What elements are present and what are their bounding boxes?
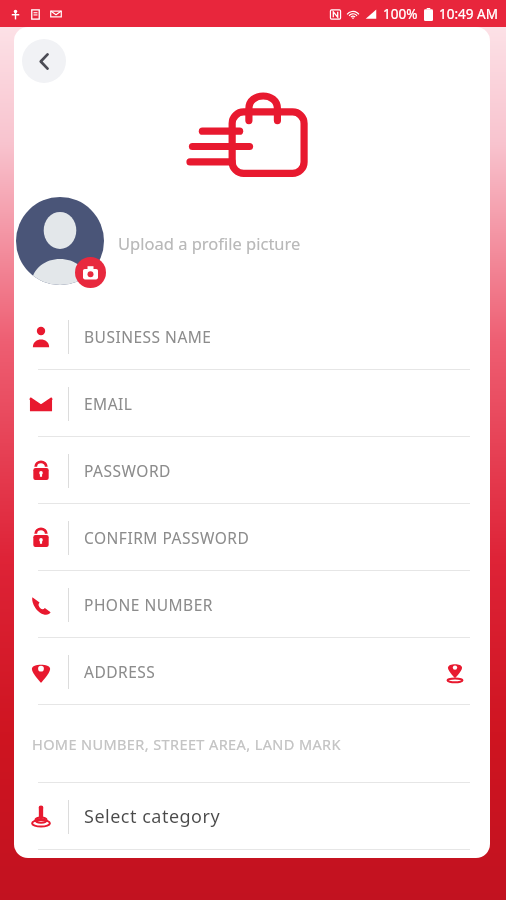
staticText: PASSWORD <box>84 460 171 481</box>
button[interactable]: ADDRESS <box>14 638 490 705</box>
button[interactable]: Select category <box>14 783 490 850</box>
staticText: EMAIL <box>84 393 133 414</box>
button[interactable]: CONFIRM PASSWORD <box>14 504 490 571</box>
button[interactable]: BUSINESS NAME <box>14 303 490 370</box>
staticText: 10:49 AM <box>439 5 498 23</box>
staticText: 100% <box>383 5 418 23</box>
staticText: ADDRESS <box>84 661 156 682</box>
staticText: Select category <box>84 804 221 829</box>
button[interactable]: HOME NUMBER, STREET AREA, LAND MARK <box>14 705 490 783</box>
staticText: Upload a profile picture <box>118 232 301 254</box>
button[interactable]: PASSWORD <box>14 437 490 504</box>
button[interactable]: EMAIL <box>14 370 490 437</box>
other: Change photo <box>75 257 106 288</box>
button[interactable]: PHONE NUMBER <box>14 571 490 638</box>
staticText: PHONE NUMBER <box>84 594 213 615</box>
button[interactable]: Pick location on map <box>440 657 470 687</box>
staticText: CONFIRM PASSWORD <box>84 527 250 548</box>
staticText: HOME NUMBER, STREET AREA, LAND MARK <box>32 734 341 754</box>
staticText: BUSINESS NAME <box>84 326 212 347</box>
button[interactable]: Change photo <box>16 197 490 289</box>
button[interactable]: Back <box>22 39 66 83</box>
